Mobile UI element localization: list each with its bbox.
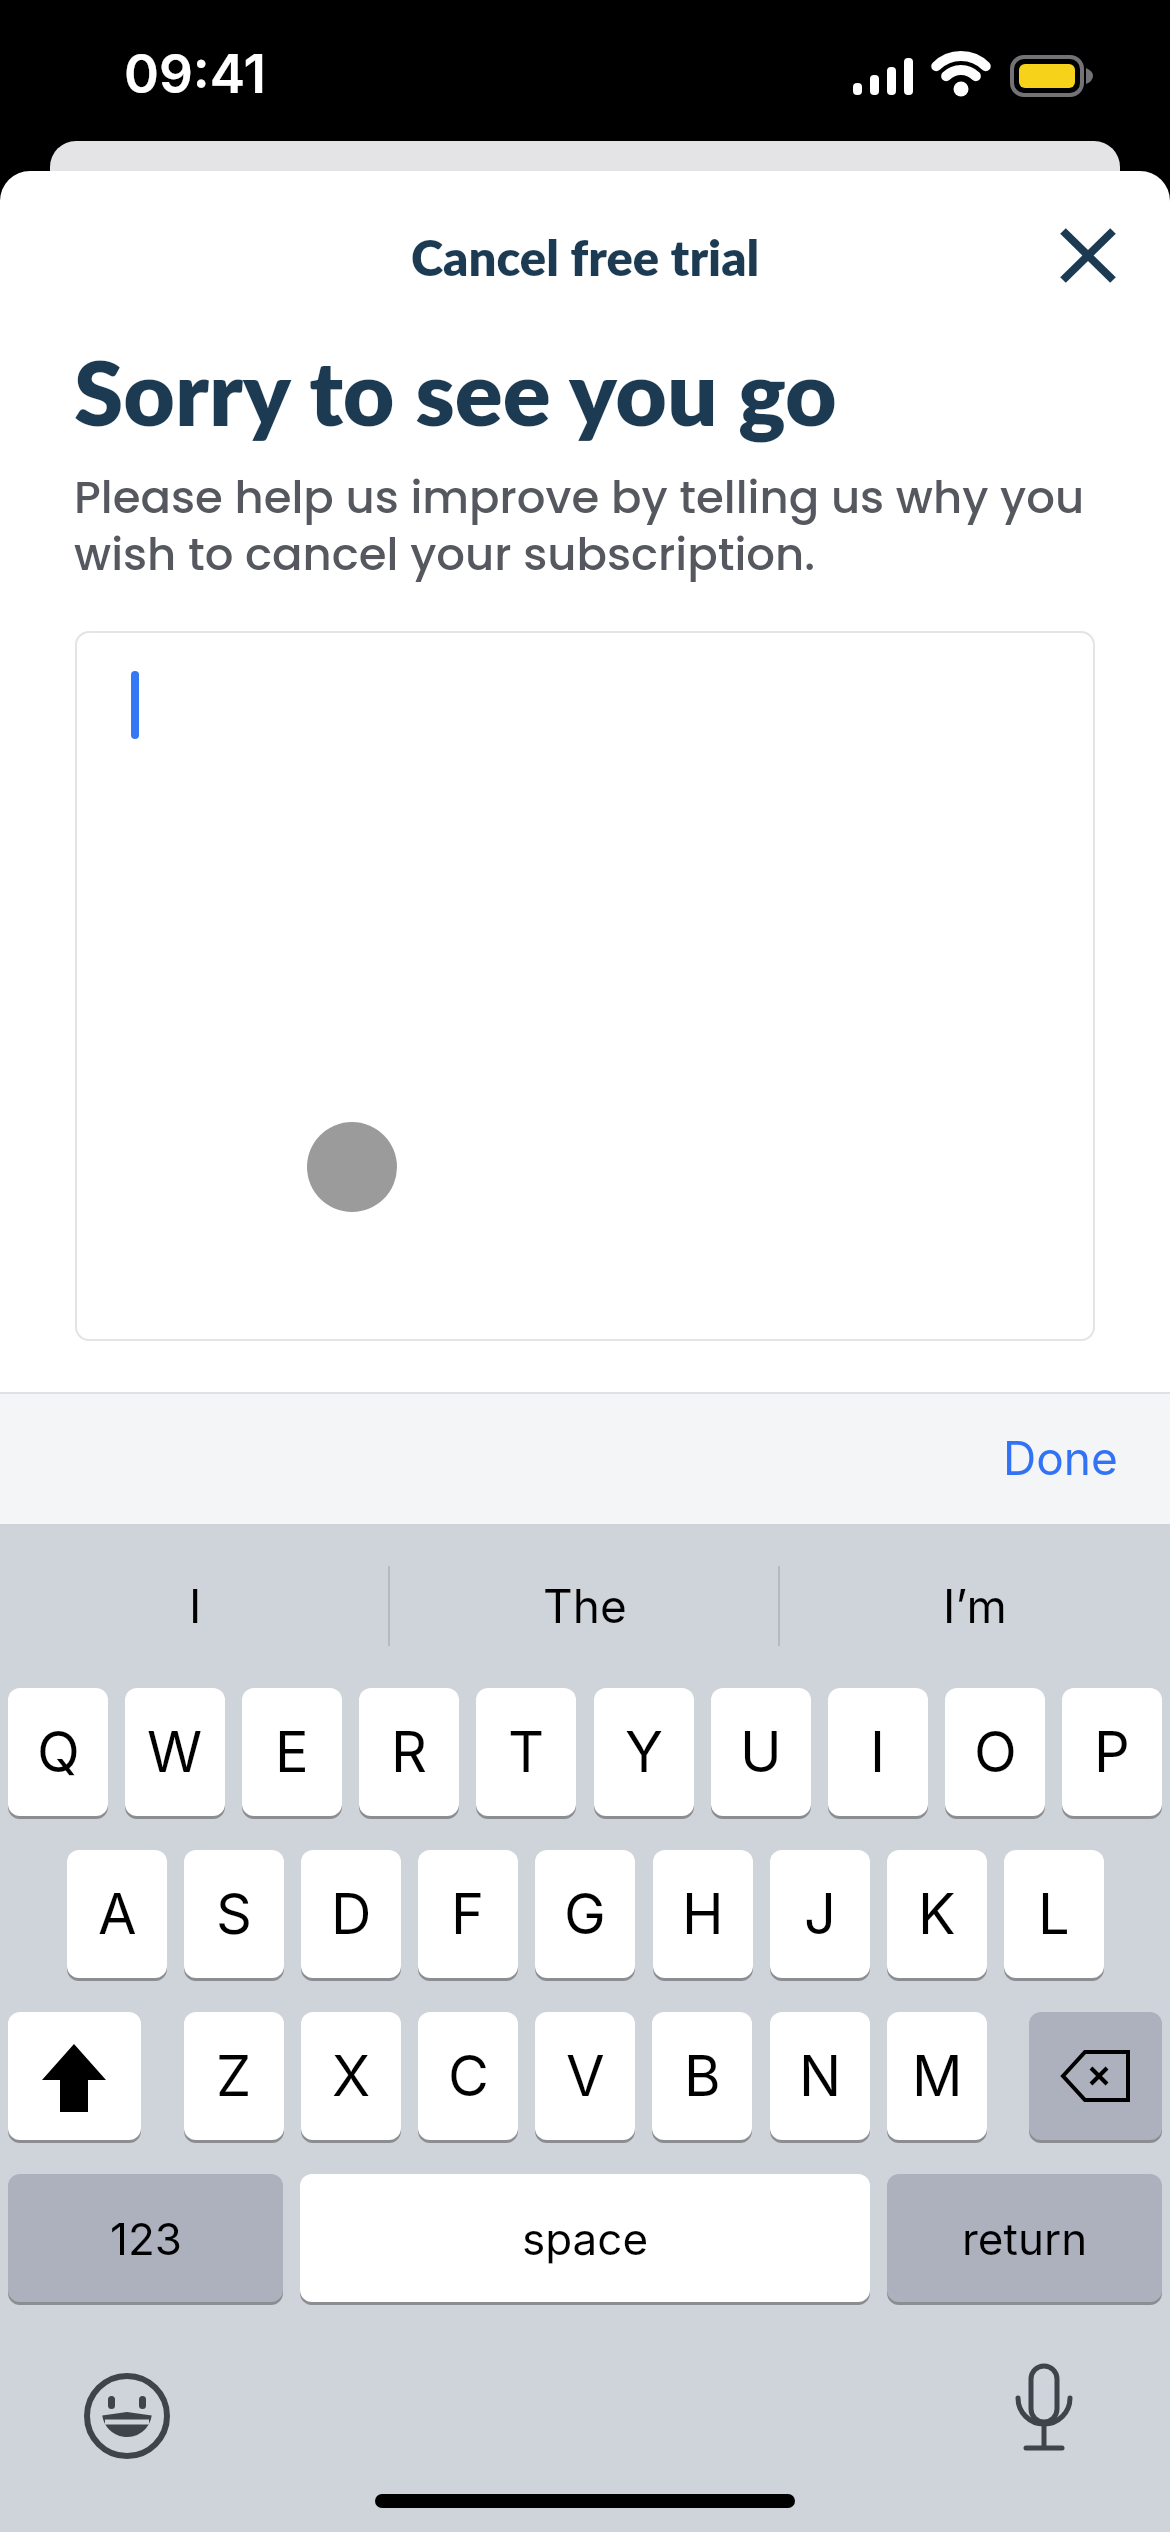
staticText: N [799,2042,842,2110]
staticText: R [391,1718,428,1786]
staticText: L [1038,1880,1070,1948]
staticText: Cancel free trial [411,228,760,287]
button[interactable]: F [418,1850,518,1978]
staticText: A [98,1880,137,1948]
button[interactable]: return [887,2174,1162,2302]
staticText: P [1094,1718,1130,1786]
button[interactable]: R [359,1688,459,1816]
button[interactable]: space [300,2174,870,2302]
staticText: B [684,2042,721,2110]
staticText: K [918,1880,956,1948]
button[interactable]: Z [184,2012,284,2140]
staticText: O [974,1718,1017,1786]
button[interactable]: S [184,1850,284,1978]
staticText: I [870,1718,886,1786]
staticText: I’m [943,1578,1007,1634]
button[interactable]: H [653,1850,753,1978]
button[interactable]: J [770,1850,870,1978]
staticText: H [682,1880,724,1948]
staticText: F [451,1880,485,1948]
staticText: M [912,2042,963,2110]
staticText: wish to cancel your subscription. [74,523,816,586]
button[interactable]: V [535,2012,635,2140]
staticText: W [147,1718,203,1786]
button[interactable]: T [476,1688,576,1816]
staticText: The [543,1578,627,1634]
button[interactable]: X [301,2012,401,2140]
staticText: D [331,1880,372,1948]
button[interactable]: 123 [8,2174,283,2302]
staticText: J [804,1880,836,1948]
button[interactable]: The [390,1548,780,1664]
button[interactable]: K [887,1850,987,1978]
staticText: C [448,2042,489,2110]
button[interactable]: E [242,1688,342,1816]
button[interactable]: W [125,1688,225,1816]
staticText: G [564,1880,606,1948]
button[interactable]: C [418,2012,518,2140]
staticText: X [332,2042,371,2110]
staticText: return [962,2212,1088,2265]
staticText: S [216,1880,252,1948]
button[interactable]: I’m [780,1548,1170,1664]
staticText: V [566,2042,605,2110]
button[interactable] [1029,2012,1162,2140]
button[interactable]: I [0,1548,390,1664]
button[interactable]: O [945,1688,1045,1816]
staticText: E [275,1718,309,1786]
button[interactable]: P [1062,1688,1162,1816]
button[interactable]: N [770,2012,870,2140]
staticText: Y [625,1718,664,1786]
button[interactable]: I [828,1688,928,1816]
button[interactable] [75,631,1095,1341]
staticText: Sorry to see you go [74,338,837,445]
button[interactable]: U [711,1688,811,1816]
button[interactable]: B [652,2012,752,2140]
staticText: space [522,2212,649,2265]
staticText: 123 [110,2212,182,2265]
staticText: 09:41 [124,42,266,106]
staticText: Please help us improve by telling us why… [74,466,1085,529]
button[interactable]: Q [8,1688,108,1816]
button[interactable]: M [887,2012,987,2140]
button[interactable]: D [301,1850,401,1978]
staticText: Z [216,2042,252,2110]
button[interactable]: A [67,1850,167,1978]
button[interactable]: G [535,1850,635,1978]
button[interactable]: Y [594,1688,694,1816]
button[interactable]: L [1004,1850,1104,1978]
staticText: T [508,1718,545,1786]
staticText: U [740,1718,782,1786]
button[interactable] [8,2012,141,2140]
button[interactable]: Done [950,1392,1170,1524]
staticText: Done [1003,1430,1118,1486]
staticText: I [189,1578,202,1634]
staticText: Q [37,1718,80,1786]
button[interactable] [1043,212,1133,300]
